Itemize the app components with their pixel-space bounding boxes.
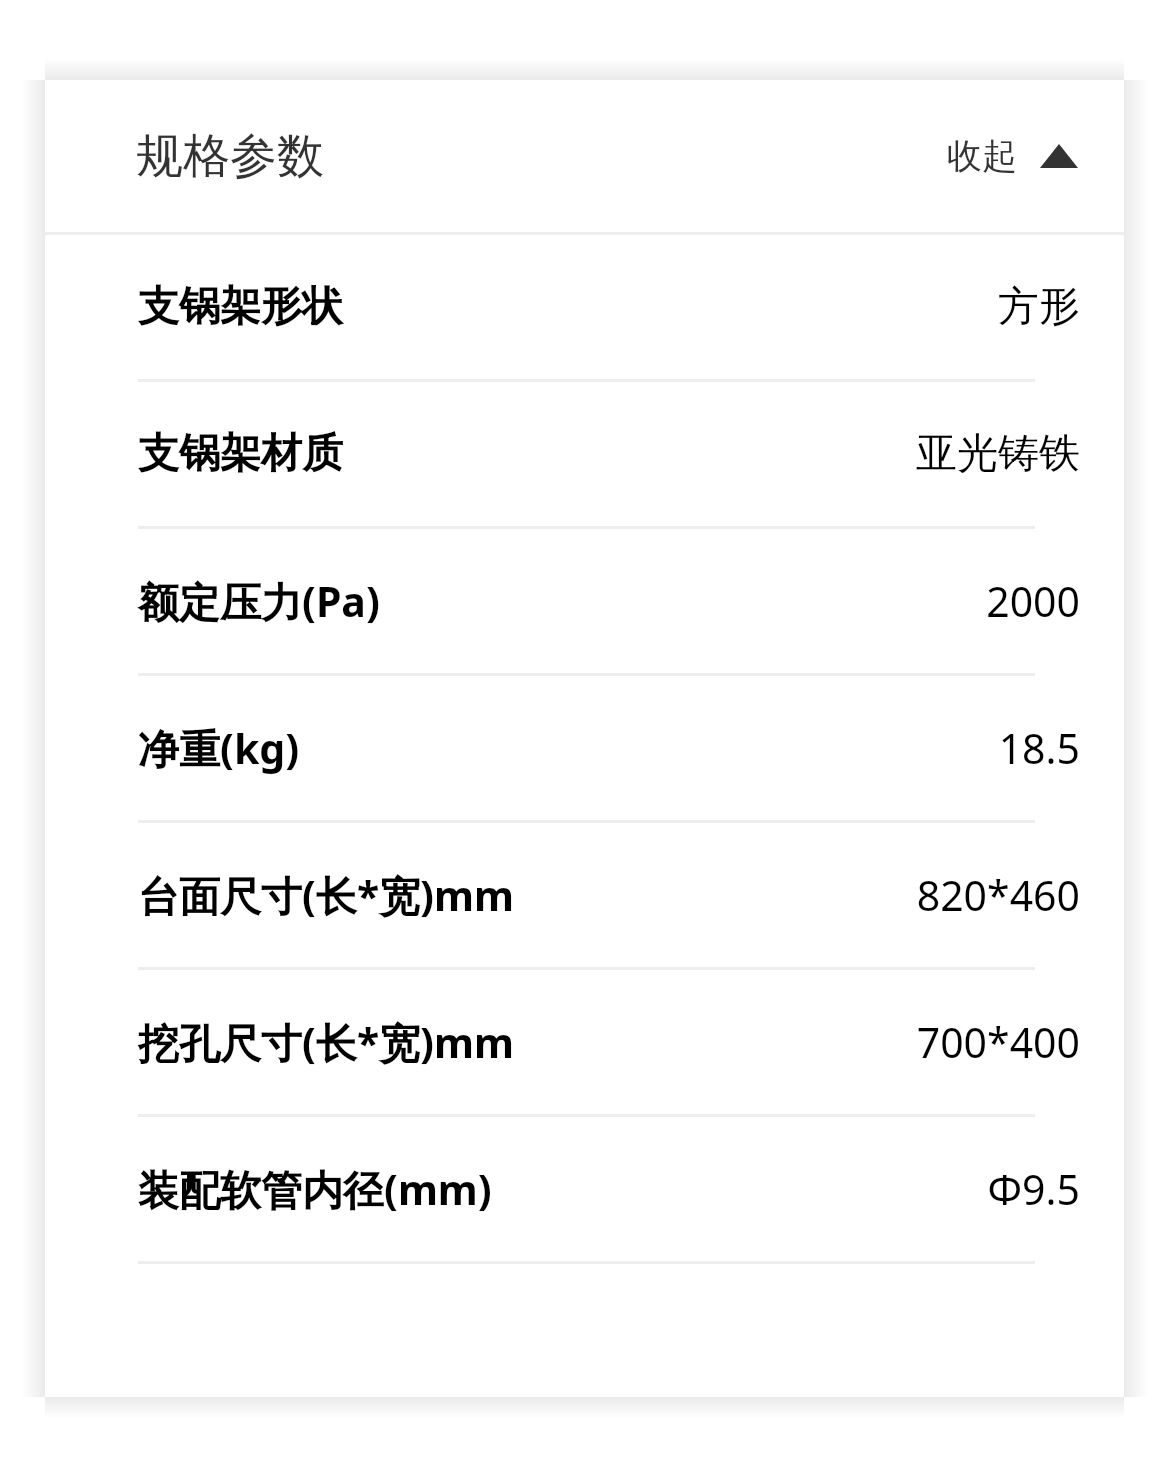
staticText: 额定压力(Pa) — [138, 573, 380, 629]
staticText: 规格参数 — [136, 127, 324, 186]
staticText: 支锅架材质 — [138, 428, 343, 480]
button[interactable]: 额定压力(Pa) — [45, 529, 1124, 676]
button[interactable]: 装配软管内径(mm) — [45, 1117, 1124, 1264]
staticText: 方形 — [359, 281, 1080, 333]
staticText: 挖孔尺寸(长*宽)mm — [138, 1014, 514, 1070]
staticText: 2000 — [396, 573, 1080, 629]
staticText: 820*460 — [530, 867, 1080, 923]
staticText: 净重(kg) — [138, 720, 300, 776]
staticText: 装配软管内径(mm) — [138, 1161, 492, 1217]
other: 收起 — [1040, 144, 1078, 168]
button[interactable]: 台面尺寸(长*宽)mm — [45, 823, 1124, 970]
staticText: Φ9.5 — [508, 1161, 1080, 1217]
staticText: 收起 — [947, 134, 1017, 178]
staticText: 18.5 — [316, 720, 1080, 776]
staticText: 亚光铸铁 — [359, 428, 1080, 480]
staticText: 台面尺寸(长*宽)mm — [138, 867, 514, 923]
button[interactable]: 支锅架形状 — [45, 235, 1124, 382]
staticText: 700*400 — [530, 1014, 1080, 1070]
button[interactable]: 支锅架材质 — [45, 382, 1124, 529]
button[interactable]: 规格参数 — [45, 80, 1124, 232]
button[interactable]: 净重(kg) — [45, 676, 1124, 823]
button[interactable]: 挖孔尺寸(长*宽)mm — [45, 970, 1124, 1117]
staticText: 支锅架形状 — [138, 281, 343, 333]
